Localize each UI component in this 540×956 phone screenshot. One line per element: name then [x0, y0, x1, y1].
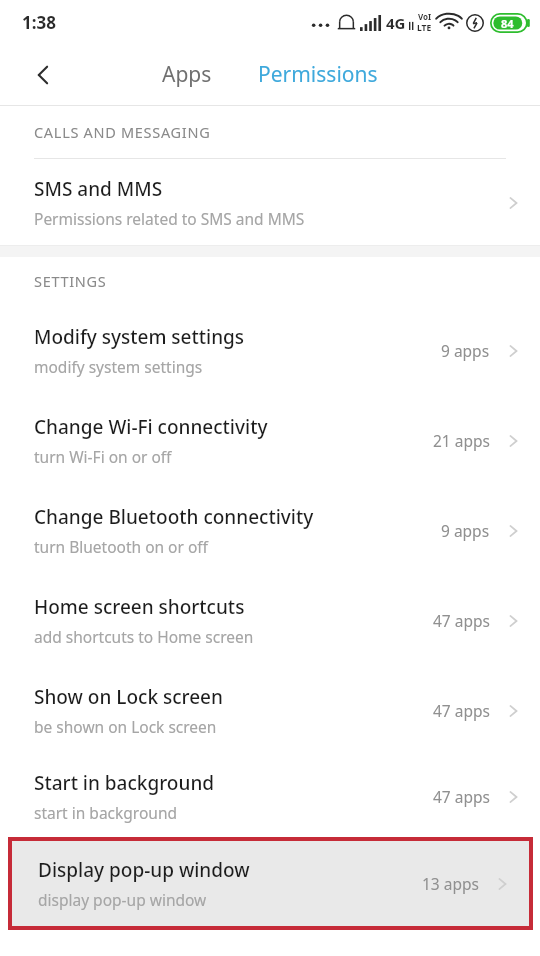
staticText: add shortcuts to Home screen	[34, 626, 254, 647]
button[interactable]: Modify system settings	[0, 305, 540, 395]
button[interactable]: SMS and MMS	[0, 159, 540, 245]
staticText: Change Wi-Fi connectivity	[34, 414, 268, 440]
staticText: Home screen shortcuts	[34, 594, 245, 620]
button[interactable]: Permissions	[248, 52, 388, 97]
button[interactable]: Start in background	[0, 755, 540, 837]
staticText: SETTINGS	[34, 271, 107, 291]
button[interactable]: Change Wi-Fi connectivity	[0, 395, 540, 485]
staticText: 13 apps	[422, 873, 479, 894]
staticText: Permissions	[258, 60, 378, 89]
staticText: 4G	[386, 13, 406, 33]
staticText: modify system settings	[34, 356, 203, 377]
staticText: 47 apps	[433, 786, 490, 807]
staticText: LTE	[417, 22, 432, 34]
staticText: Permissions related to SMS and MMS	[34, 208, 305, 229]
button[interactable]: Back	[20, 51, 68, 99]
staticText: Start in background	[34, 770, 215, 796]
staticText: 47 apps	[433, 610, 490, 631]
staticText: 21 apps	[433, 430, 490, 451]
button[interactable]: Home screen shortcuts	[0, 575, 540, 665]
staticText: 1:38	[22, 11, 56, 34]
staticText: Display pop-up window	[38, 857, 250, 883]
staticText: turn Wi-Fi on or off	[34, 446, 172, 467]
staticText: 84	[501, 16, 514, 31]
staticText: Show on Lock screen	[34, 684, 223, 710]
staticText: be shown on Lock screen	[34, 716, 217, 737]
staticText: start in background	[34, 802, 177, 823]
staticText: 9 apps	[441, 520, 490, 541]
staticText: Change Bluetooth connectivity	[34, 504, 314, 530]
button[interactable]: Show on Lock screen	[0, 665, 540, 755]
staticText: 47 apps	[433, 700, 490, 721]
button[interactable]: Apps	[152, 52, 222, 97]
button[interactable]: Display pop-up window	[12, 841, 529, 926]
staticText: CALLS AND MESSAGING	[34, 122, 211, 142]
staticText: turn Bluetooth on or off	[34, 536, 208, 557]
staticText: 9 apps	[441, 340, 490, 361]
staticText: Apps	[162, 60, 212, 89]
staticText: SMS and MMS	[34, 176, 163, 202]
staticText: Modify system settings	[34, 324, 245, 350]
button[interactable]: Change Bluetooth connectivity	[0, 485, 540, 575]
staticText: display pop-up window	[38, 889, 207, 910]
staticText: VoI	[418, 11, 432, 22]
